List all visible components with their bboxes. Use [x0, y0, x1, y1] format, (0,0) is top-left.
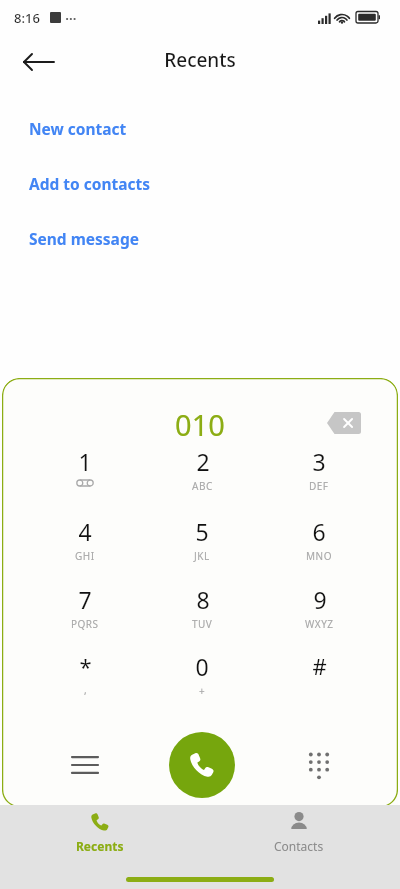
button[interactable]: Contacts: [249, 811, 349, 867]
staticText: New contact: [29, 118, 127, 139]
staticText: Send message: [29, 228, 139, 249]
staticText: 2: [196, 446, 210, 477]
staticText: 0: [195, 651, 209, 682]
staticText: *: [79, 651, 92, 681]
button[interactable]: 9: [272, 584, 366, 646]
staticText: 8:16: [14, 9, 40, 27]
staticText: Contacts: [274, 838, 324, 854]
button[interactable]: 8: [155, 584, 249, 646]
button[interactable]: Back: [18, 40, 62, 84]
staticText: Recents: [0, 47, 400, 73]
button[interactable]: Dialpad: [272, 730, 366, 800]
staticText: TUV: [192, 617, 213, 631]
button[interactable]: 4: [38, 516, 132, 578]
staticText: 6: [312, 516, 326, 547]
button[interactable]: Send message: [0, 218, 400, 258]
button[interactable]: Recents: [50, 811, 150, 867]
staticText: ABC: [192, 479, 213, 493]
button[interactable]: Call: [169, 732, 235, 798]
staticText: #: [312, 651, 327, 681]
staticText: 8: [196, 584, 210, 615]
button[interactable]: 3: [272, 446, 366, 508]
button[interactable]: *: [38, 651, 132, 713]
staticText: 010: [2, 405, 398, 444]
button[interactable]: New contact: [0, 108, 400, 148]
button[interactable]: Backspace: [316, 406, 372, 440]
button[interactable]: 2: [155, 446, 249, 508]
button[interactable]: #: [272, 651, 366, 713]
button[interactable]: 6: [272, 516, 366, 578]
button[interactable]: 0: [155, 651, 249, 713]
staticText: +: [199, 684, 206, 698]
button[interactable]: 7: [38, 584, 132, 646]
staticText: Add to contacts: [29, 173, 151, 194]
staticText: MNO: [306, 549, 332, 563]
button[interactable]: Add to contacts: [0, 163, 400, 203]
staticText: DEF: [309, 479, 329, 493]
staticText: 3: [312, 446, 326, 477]
staticText: PQRS: [71, 617, 99, 631]
staticText: ,: [84, 683, 87, 697]
staticText: 9: [313, 584, 327, 615]
button[interactable]: 1: [38, 446, 132, 508]
staticText: 1: [78, 446, 92, 477]
staticText: 4: [78, 516, 92, 547]
staticText: WXYZ: [305, 617, 334, 631]
staticText: 5: [195, 516, 209, 547]
button[interactable]: 5: [155, 516, 249, 578]
staticText: GHI: [75, 549, 95, 563]
button[interactable]: Menu: [38, 730, 132, 800]
staticText: 7: [78, 584, 92, 615]
staticText: JKL: [194, 549, 210, 563]
staticText: Recents: [76, 838, 124, 854]
